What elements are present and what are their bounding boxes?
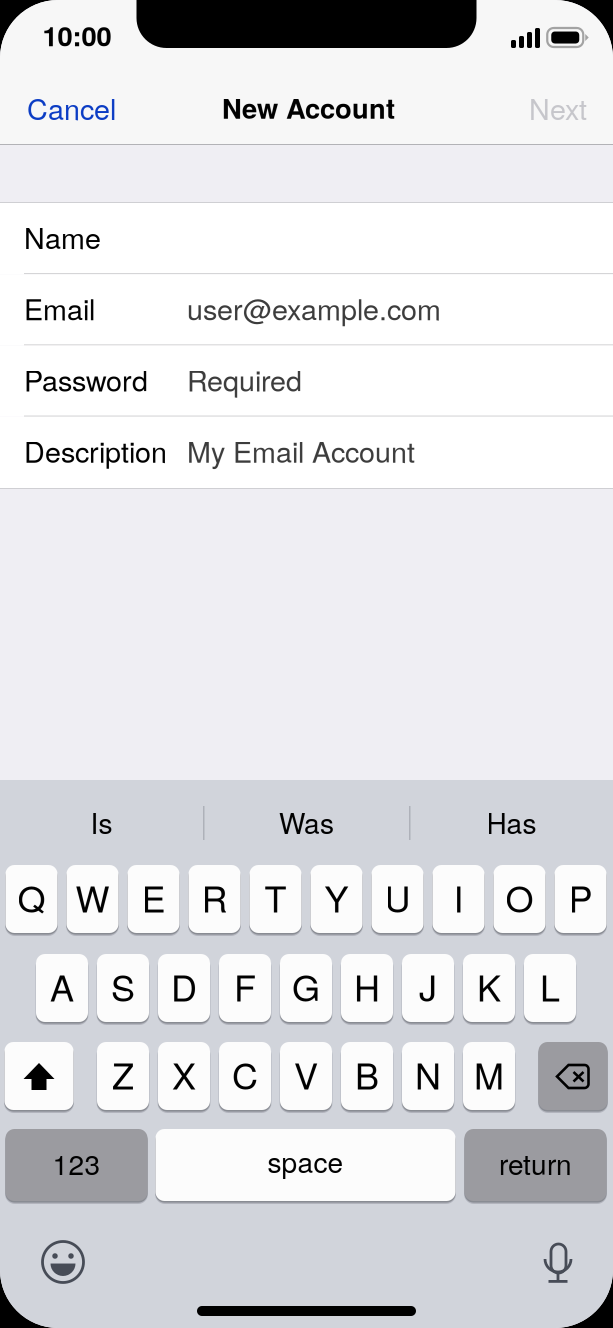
button[interactable]: R xyxy=(189,865,241,937)
staticText: I xyxy=(453,871,463,923)
staticText: C xyxy=(232,1048,258,1100)
staticText: P xyxy=(568,871,592,923)
button[interactable]: B xyxy=(341,1042,393,1114)
button[interactable]: F xyxy=(219,954,271,1026)
staticText: 10:00 xyxy=(42,15,111,54)
staticText: Password xyxy=(24,359,148,400)
button[interactable]: Next xyxy=(0,72,90,145)
button[interactable]: V xyxy=(280,1042,332,1114)
button[interactable]: G xyxy=(280,954,332,1026)
button[interactable]: E xyxy=(128,865,180,937)
button[interactable]: Delete xyxy=(539,1042,608,1114)
button[interactable]: U xyxy=(372,865,424,937)
staticText: Next xyxy=(529,87,587,128)
button[interactable]: Z xyxy=(97,1042,149,1114)
staticText: space xyxy=(267,1141,343,1181)
staticText: Has xyxy=(486,802,536,842)
staticText: My Email Account xyxy=(187,430,415,471)
button[interactable]: S xyxy=(97,954,149,1026)
staticText: return xyxy=(499,1143,572,1183)
staticText: Is xyxy=(90,802,112,842)
button[interactable]: X xyxy=(158,1042,210,1114)
staticText: Cancel xyxy=(27,87,116,128)
staticText: F xyxy=(234,960,256,1012)
staticText: Description xyxy=(24,430,167,471)
staticText: K xyxy=(477,960,501,1012)
staticText: Q xyxy=(17,871,45,923)
staticText: A xyxy=(50,960,74,1012)
staticText: E xyxy=(141,871,165,923)
staticText: Name xyxy=(24,216,101,257)
button[interactable]: Is xyxy=(0,780,203,864)
button[interactable]: D xyxy=(158,954,210,1026)
button[interactable]: Dictation xyxy=(544,1244,573,1283)
staticText: M xyxy=(474,1048,504,1100)
button[interactable]: J xyxy=(402,954,454,1026)
button[interactable]: P xyxy=(555,865,607,937)
staticText: O xyxy=(505,871,533,923)
staticText: N xyxy=(415,1048,441,1100)
staticText: user@example.com xyxy=(187,287,441,328)
button[interactable]: Shift xyxy=(5,1042,74,1114)
button[interactable]: O xyxy=(494,865,546,937)
staticText: New Account xyxy=(222,88,395,127)
button[interactable]: Password xyxy=(0,345,613,417)
button[interactable]: Emoji keyboard xyxy=(41,1240,85,1284)
staticText: Was xyxy=(279,802,334,842)
staticText: T xyxy=(264,871,286,923)
button[interactable]: H xyxy=(341,954,393,1026)
button[interactable]: L xyxy=(524,954,576,1026)
button[interactable]: space xyxy=(156,1129,456,1205)
button[interactable]: Was xyxy=(205,780,408,864)
button[interactable]: Description xyxy=(0,417,613,488)
staticText: Required xyxy=(187,359,302,400)
staticText: B xyxy=(355,1048,379,1100)
button[interactable]: M xyxy=(463,1042,515,1114)
button[interactable]: Q xyxy=(6,865,58,937)
button[interactable]: K xyxy=(463,954,515,1026)
button[interactable]: T xyxy=(250,865,302,937)
button[interactable]: Email xyxy=(0,274,613,345)
staticText: Email xyxy=(24,287,95,328)
staticText: 123 xyxy=(52,1143,100,1183)
button[interactable]: return xyxy=(465,1129,607,1205)
staticText: X xyxy=(172,1048,196,1100)
button[interactable]: Has xyxy=(410,780,613,864)
staticText: D xyxy=(171,960,197,1012)
button[interactable]: I xyxy=(433,865,485,937)
staticText: V xyxy=(294,1048,318,1100)
button[interactable]: 123 xyxy=(6,1129,148,1205)
staticText: G xyxy=(292,960,320,1012)
button[interactable]: W xyxy=(67,865,119,937)
staticText: U xyxy=(384,871,410,923)
button[interactable]: Cancel xyxy=(0,72,120,145)
staticText: J xyxy=(419,960,437,1012)
staticText: L xyxy=(540,960,560,1012)
button[interactable]: C xyxy=(219,1042,271,1114)
button[interactable]: Y xyxy=(311,865,363,937)
button[interactable]: N xyxy=(402,1042,454,1114)
button[interactable]: Name xyxy=(0,203,613,274)
staticText: Y xyxy=(324,871,348,923)
staticText: S xyxy=(111,960,135,1012)
staticText: R xyxy=(201,871,227,923)
staticText: W xyxy=(75,871,109,923)
staticText: Z xyxy=(112,1048,134,1100)
button[interactable]: A xyxy=(36,954,88,1026)
staticText: H xyxy=(354,960,380,1012)
